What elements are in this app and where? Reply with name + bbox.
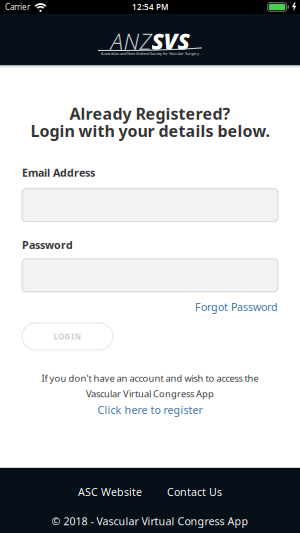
button[interactable]: Contact Us	[167, 485, 222, 499]
button[interactable]: LOGIN	[22, 323, 113, 350]
staticText: Vascular Virtual Congress App	[86, 387, 214, 400]
staticText: Click here to register	[97, 403, 202, 417]
staticText: LOGIN	[53, 331, 81, 342]
staticText: If you don't have an account and wish to…	[41, 372, 258, 384]
staticText: Australian and New Zealand Society for V…	[101, 51, 199, 56]
staticText: ANZ	[110, 26, 151, 56]
button[interactable]: Forgot Password	[195, 300, 278, 314]
staticText: Forgot Password	[195, 300, 278, 314]
staticText: ASC Website	[78, 485, 142, 499]
button[interactable]: Click here to register	[97, 403, 202, 417]
staticText: Already Registered?	[69, 103, 230, 124]
staticText: Login with your details below.	[30, 120, 269, 141]
staticText: 12:54 PM	[132, 2, 168, 12]
button[interactable]: ASC Website	[78, 485, 142, 499]
staticText: Contact Us	[167, 485, 222, 499]
staticText: SVS	[151, 26, 189, 56]
staticText: Carrier	[5, 2, 30, 12]
staticText: © 2018 - Vascular Virtual Congress App	[51, 514, 248, 528]
staticText: Password	[22, 238, 73, 252]
staticText: Email Address	[22, 165, 95, 180]
